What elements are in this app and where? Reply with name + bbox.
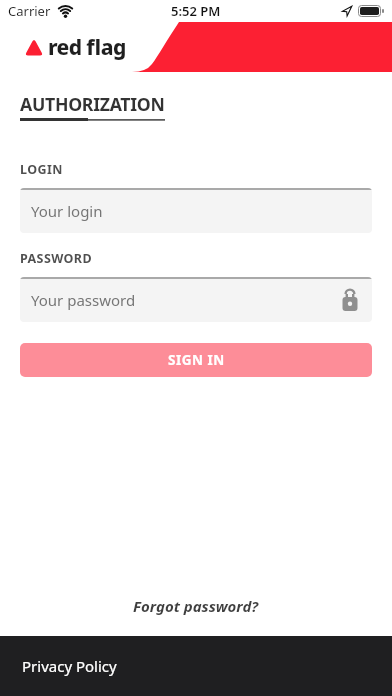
button[interactable]: Forgot password? [133,596,259,616]
staticText: PASSWORD [20,250,92,267]
staticText: Privacy Policy [22,656,117,676]
button[interactable]: SIGN IN [20,343,372,377]
staticText: SIGN IN [168,351,225,369]
staticText: Your password [31,290,136,310]
staticText: Your login [31,201,103,221]
staticText: AUTHORIZATION [20,92,165,116]
button[interactable]: Privacy Policy [0,636,392,696]
staticText: 5:52 PM [171,2,221,20]
staticText: red flag [48,33,126,62]
staticText: LOGIN [20,161,63,178]
button[interactable]: Your login [20,188,372,233]
staticText: Carrier [8,2,51,20]
button[interactable]: Your password [20,277,372,322]
staticText: Forgot password? [133,596,259,616]
